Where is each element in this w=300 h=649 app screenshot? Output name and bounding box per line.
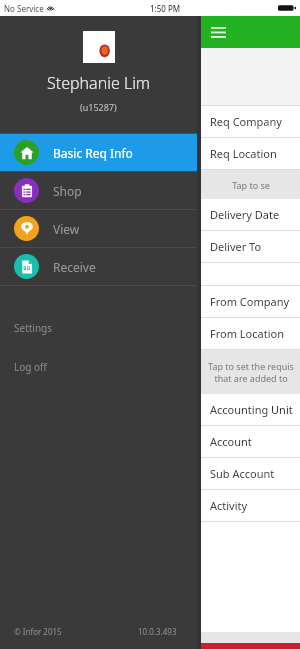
staticText: 1:50 PM [150,3,181,14]
staticText: Req Company [210,114,282,129]
staticText: Basic Req Info [53,145,133,161]
staticText: From Location [210,326,284,341]
staticText: No Service [4,3,44,14]
button[interactable]: Tap to set the requis [201,350,300,394]
staticText: Req Location [210,146,277,161]
staticText: Sub Account [210,466,275,481]
button[interactable]: Deliver To [201,231,300,262]
staticText: Activity [210,498,248,513]
button[interactable]: Activity [201,490,300,521]
staticText: (u15287) [80,101,117,113]
staticText: Deliver To [210,239,262,254]
button[interactable]: Account [201,426,300,457]
staticText: Delivery Date [210,207,280,222]
button[interactable]: Basic Req Info [0,134,197,171]
button[interactable]: Tap to se [201,170,300,199]
button[interactable]: Settings [0,320,197,336]
button[interactable]: From Location [201,318,300,349]
staticText: From Company [210,294,290,309]
staticText: Tap to set the requis [208,360,294,372]
button[interactable]: Sub Account [201,458,300,489]
staticText: Shop [53,183,82,199]
button[interactable]: From Company [201,286,300,317]
staticText: that are added to [214,372,288,384]
staticText: Stephanie Lim [47,72,151,94]
staticText: Tap to se [232,179,270,191]
button[interactable]: Menu [201,16,300,48]
button[interactable]: Req Location [201,138,300,169]
button[interactable]: Delivery Date [201,199,300,230]
button[interactable]: Receive [0,248,197,285]
staticText: Receive [53,259,96,275]
button[interactable]: Accounting Unit [201,394,300,425]
button[interactable]: Log off [0,359,197,375]
staticText: Account [210,434,252,449]
button[interactable]: Req Company [201,106,300,137]
button[interactable]: View [0,210,197,247]
button[interactable]: Shop [0,172,197,209]
staticText: View [53,221,80,237]
staticText: Accounting Unit [210,402,293,417]
staticText: © Infor 2015 [14,626,62,637]
staticText: Settings [14,321,53,335]
staticText: Log off [14,360,47,374]
staticText: 10.0.3.493 [138,626,177,637]
